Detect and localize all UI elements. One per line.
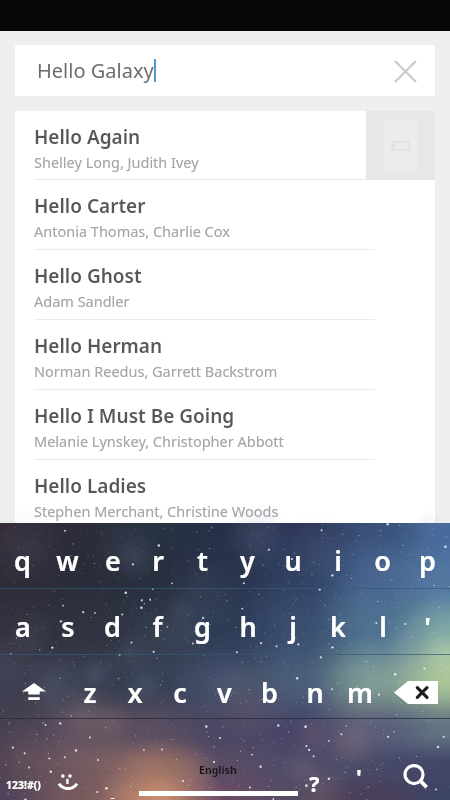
staticText: d bbox=[104, 608, 121, 645]
button[interactable]: Emoji bbox=[53, 767, 82, 793]
staticText: g bbox=[194, 608, 211, 645]
staticText: o bbox=[374, 542, 391, 579]
staticText: Shelley Long, Judith Ivey bbox=[34, 152, 199, 172]
staticText: z bbox=[83, 674, 97, 711]
button[interactable]: x bbox=[112, 672, 157, 712]
button[interactable]: g bbox=[180, 606, 225, 646]
staticText: 123!#() bbox=[6, 778, 41, 792]
button[interactable]: Hello Again bbox=[15, 111, 435, 180]
staticText: Norman Reedus, Garrett Backstrom bbox=[34, 361, 278, 381]
button[interactable]: q bbox=[0, 540, 45, 580]
button[interactable]: Backspace bbox=[382, 672, 450, 712]
staticText: m bbox=[347, 674, 373, 711]
button[interactable]: t bbox=[180, 540, 225, 580]
staticText: p bbox=[419, 542, 436, 579]
button[interactable]: Shift bbox=[0, 672, 67, 712]
button[interactable]: 123!#() bbox=[0, 772, 46, 798]
staticText: f bbox=[152, 608, 163, 645]
staticText: Melanie Lynskey, Christopher Abbott bbox=[34, 431, 284, 451]
button[interactable]: j bbox=[270, 606, 315, 646]
button[interactable]: n bbox=[292, 672, 337, 712]
staticText: a bbox=[15, 608, 31, 645]
staticText: u bbox=[284, 542, 302, 579]
button[interactable]: , bbox=[99, 775, 126, 799]
staticText: ? bbox=[309, 768, 320, 793]
staticText: j bbox=[289, 608, 297, 645]
staticText: English bbox=[199, 763, 237, 777]
button[interactable]: a bbox=[0, 606, 45, 646]
staticText: q bbox=[14, 542, 31, 579]
button[interactable]: v bbox=[202, 672, 247, 712]
button[interactable]: Clear search bbox=[382, 48, 428, 94]
staticText: Antonia Thomas, Charlie Cox bbox=[34, 221, 230, 241]
staticText: v bbox=[217, 674, 232, 711]
button[interactable]: Hello Ghost bbox=[15, 250, 435, 320]
staticText: t bbox=[197, 542, 208, 579]
staticText: Hello I Must Be Going bbox=[34, 403, 235, 429]
button[interactable]: Hello Carter bbox=[15, 180, 435, 250]
button[interactable]: u bbox=[270, 540, 315, 580]
staticText: s bbox=[61, 608, 75, 645]
staticText: c bbox=[173, 674, 187, 711]
button[interactable]: k bbox=[315, 606, 360, 646]
staticText: ' bbox=[424, 608, 431, 645]
button[interactable]: Hello Herman bbox=[15, 320, 435, 390]
staticText: h bbox=[239, 608, 257, 645]
staticText: i bbox=[334, 542, 342, 579]
button[interactable]: English bbox=[134, 743, 302, 800]
staticText: Hello Ladies bbox=[34, 473, 147, 499]
button[interactable]: f bbox=[135, 606, 180, 646]
staticText: x bbox=[127, 674, 143, 711]
button[interactable]: w bbox=[45, 540, 90, 580]
button[interactable]: b bbox=[247, 672, 292, 712]
staticText: b bbox=[261, 674, 278, 711]
staticText: l bbox=[379, 608, 387, 645]
button[interactable]: p bbox=[405, 540, 450, 580]
staticText: , bbox=[109, 775, 116, 799]
staticText: k bbox=[330, 608, 346, 645]
button[interactable]: i bbox=[315, 540, 360, 580]
staticText: y bbox=[240, 542, 255, 579]
staticText: Hello Ghost bbox=[34, 263, 142, 289]
button[interactable]: Voice search bbox=[398, 762, 434, 796]
button[interactable]: d bbox=[90, 606, 135, 646]
button[interactable]: e bbox=[90, 540, 135, 580]
button[interactable]: m bbox=[337, 672, 382, 712]
staticText: Hello Again bbox=[34, 124, 141, 150]
button[interactable]: ' bbox=[405, 606, 450, 646]
button[interactable]: Hello Ladies bbox=[15, 460, 435, 523]
button[interactable]: r bbox=[135, 540, 180, 580]
button[interactable]: Hello Galaxy bbox=[15, 45, 435, 96]
button[interactable]: s bbox=[45, 606, 90, 646]
staticText: Adam Sandler bbox=[34, 291, 130, 311]
staticText: e bbox=[105, 542, 121, 579]
staticText: Stephen Merchant, Christine Woods bbox=[34, 501, 279, 521]
button[interactable]: Hello I Must Be Going bbox=[15, 390, 435, 460]
button[interactable]: y bbox=[225, 540, 270, 580]
staticText: Hello Herman bbox=[34, 333, 163, 359]
button[interactable]: ? bbox=[301, 768, 328, 793]
button[interactable]: o bbox=[360, 540, 405, 580]
button[interactable]: c bbox=[157, 672, 202, 712]
staticText: n bbox=[306, 674, 324, 711]
staticText: w bbox=[56, 542, 79, 579]
staticText: Hello Carter bbox=[34, 193, 146, 219]
button[interactable]: l bbox=[360, 606, 405, 646]
button[interactable]: z bbox=[67, 672, 112, 712]
staticText: r bbox=[152, 542, 164, 579]
staticText: ' bbox=[356, 761, 362, 785]
staticText: Hello Galaxy bbox=[37, 57, 154, 84]
button[interactable]: ' bbox=[347, 761, 371, 785]
button[interactable]: h bbox=[225, 606, 270, 646]
